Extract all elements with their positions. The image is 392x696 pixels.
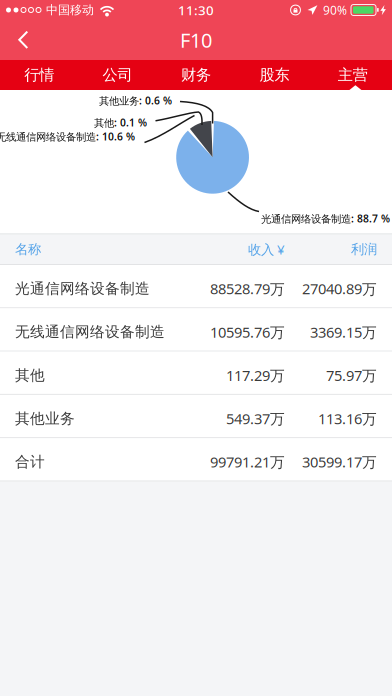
button[interactable]: 合计 <box>0 438 392 481</box>
staticText: 合计 <box>15 453 45 471</box>
staticText: 30599.17万 <box>302 452 377 472</box>
button[interactable]: 公司 <box>78 60 157 90</box>
staticText: 117.29万 <box>226 365 285 385</box>
staticText: F10 <box>180 26 212 54</box>
staticText: 88528.79万 <box>210 279 285 299</box>
staticText: 无线通信网络设备制造 <box>15 323 165 341</box>
staticText: 10595.76万 <box>210 322 285 342</box>
staticText: 113.16万 <box>318 409 377 429</box>
button[interactable]: 无线通信网络设备制造 <box>0 308 392 352</box>
staticText: 其他: 0.1 % <box>94 115 147 130</box>
staticText: 光通信网络设备制造: 88.7 % <box>261 211 390 226</box>
staticText: 光通信网络设备制造 <box>15 279 150 298</box>
button[interactable]: 行情 <box>0 60 78 90</box>
staticText: 无线通信网络设备制造: 10.6 % <box>0 129 135 144</box>
button[interactable]: 光通信网络设备制造 <box>0 265 392 308</box>
button[interactable]: 财务 <box>157 60 235 90</box>
staticText: 中国移动 <box>46 2 94 17</box>
staticText: 其他业务: 0.6 % <box>99 93 172 108</box>
staticText: 行情 <box>24 65 54 84</box>
staticText: 27040.89万 <box>302 279 377 299</box>
staticText: 公司 <box>103 65 133 84</box>
staticText: 财务 <box>181 65 211 84</box>
staticText: 11:30 <box>178 1 214 19</box>
staticText: 主营 <box>338 65 368 84</box>
staticText: 名称 <box>15 241 41 258</box>
button[interactable]: 其他业务 <box>0 395 392 438</box>
staticText: 99791.21万 <box>210 452 285 472</box>
button[interactable]: 股东 <box>235 60 314 90</box>
staticText: 549.37万 <box>226 409 285 429</box>
staticText: 其他业务 <box>15 409 75 428</box>
staticText: 75.97万 <box>326 365 377 385</box>
staticText: 收入 ¥ <box>248 240 285 258</box>
button[interactable]: Back <box>0 20 45 60</box>
button[interactable]: 其他 <box>0 352 392 395</box>
button[interactable]: 主营 <box>314 60 392 90</box>
staticText: 其他 <box>15 366 45 384</box>
staticText: 3369.15万 <box>310 322 377 342</box>
staticText: 90% <box>323 2 347 18</box>
staticText: 股东 <box>259 65 289 84</box>
staticText: 利润 <box>351 241 377 258</box>
